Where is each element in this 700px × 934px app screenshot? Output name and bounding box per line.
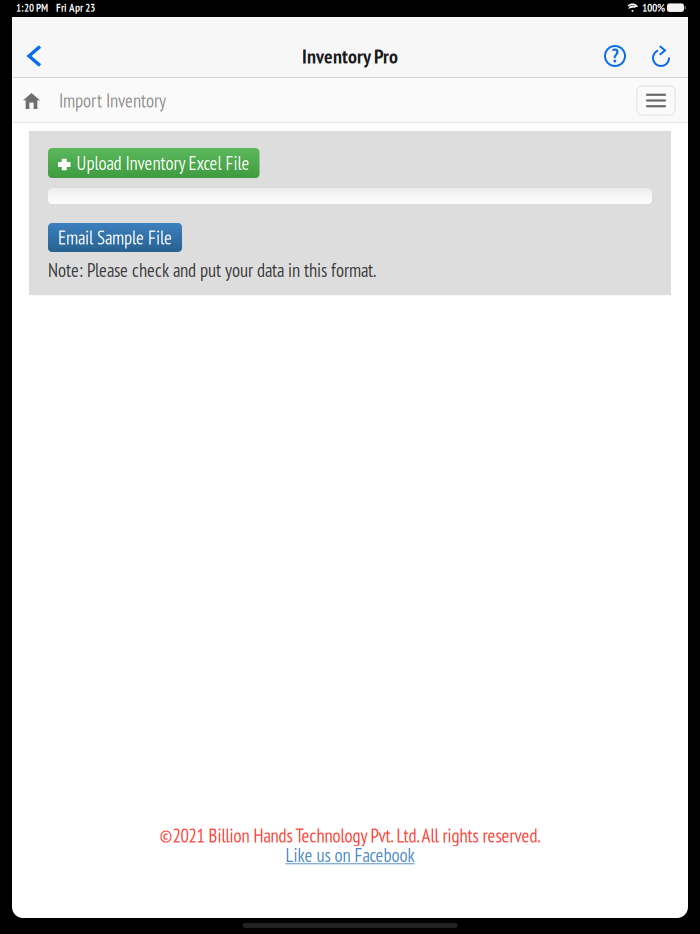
button[interactable]: Help — [593, 34, 637, 78]
staticText: Like us on Facebook — [285, 843, 414, 867]
button[interactable]: Upload Inventory Excel File — [48, 148, 259, 178]
staticText: Inventory Pro — [302, 43, 398, 69]
button[interactable]: Back — [12, 34, 54, 77]
staticText: 1:20 PM — [16, 1, 48, 15]
button[interactable]: Email Sample File — [48, 223, 182, 252]
staticText: ? — [611, 43, 618, 68]
button[interactable]: Like us on Facebook — [285, 845, 414, 865]
staticText: Fri Apr 23 — [56, 0, 95, 15]
button[interactable]: Home — [12, 80, 49, 121]
staticText: Upload Inventory Excel File — [76, 151, 249, 175]
staticText: ©2021 Billion Hands Technology Pvt. Ltd.… — [159, 823, 540, 848]
staticText: 100% — [642, 0, 665, 15]
staticText: Import Inventory — [59, 88, 166, 113]
button[interactable]: Menu — [637, 86, 688, 115]
staticText: Email Sample File — [58, 225, 172, 250]
staticText: Note: Please check and put your data in … — [48, 258, 376, 282]
button[interactable]: Reload — [637, 34, 688, 78]
